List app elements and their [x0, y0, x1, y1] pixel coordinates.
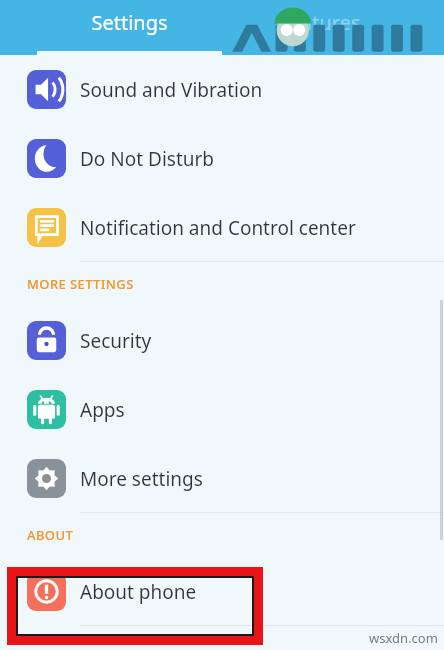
staticText: Sound and Vibration	[80, 77, 263, 103]
button[interactable]: Settings	[37, 0, 222, 55]
staticText: Notification and Control center	[80, 215, 356, 241]
staticText: ABOUT	[27, 526, 74, 544]
staticText: Settings	[91, 9, 168, 36]
button[interactable]: Notification and Control center	[0, 193, 444, 262]
button[interactable]: Do Not Disturb	[0, 124, 444, 193]
staticText: More settings	[80, 466, 203, 492]
staticText: Do Not Disturb	[80, 146, 215, 172]
staticText: Features	[279, 9, 361, 36]
staticText: MORE SETTINGS	[27, 275, 134, 293]
button[interactable]: Sound and Vibration	[0, 55, 444, 124]
button[interactable]: Apps	[0, 375, 444, 444]
staticText: About phone	[80, 579, 197, 605]
staticText: Security	[80, 328, 152, 354]
button[interactable]: About phone	[0, 557, 444, 626]
button[interactable]: More settings	[0, 444, 444, 513]
button[interactable]: Security	[0, 306, 444, 375]
button[interactable]: Features	[240, 0, 400, 55]
staticText: wsxdn.com	[369, 629, 438, 647]
staticText: Apps	[80, 397, 125, 423]
